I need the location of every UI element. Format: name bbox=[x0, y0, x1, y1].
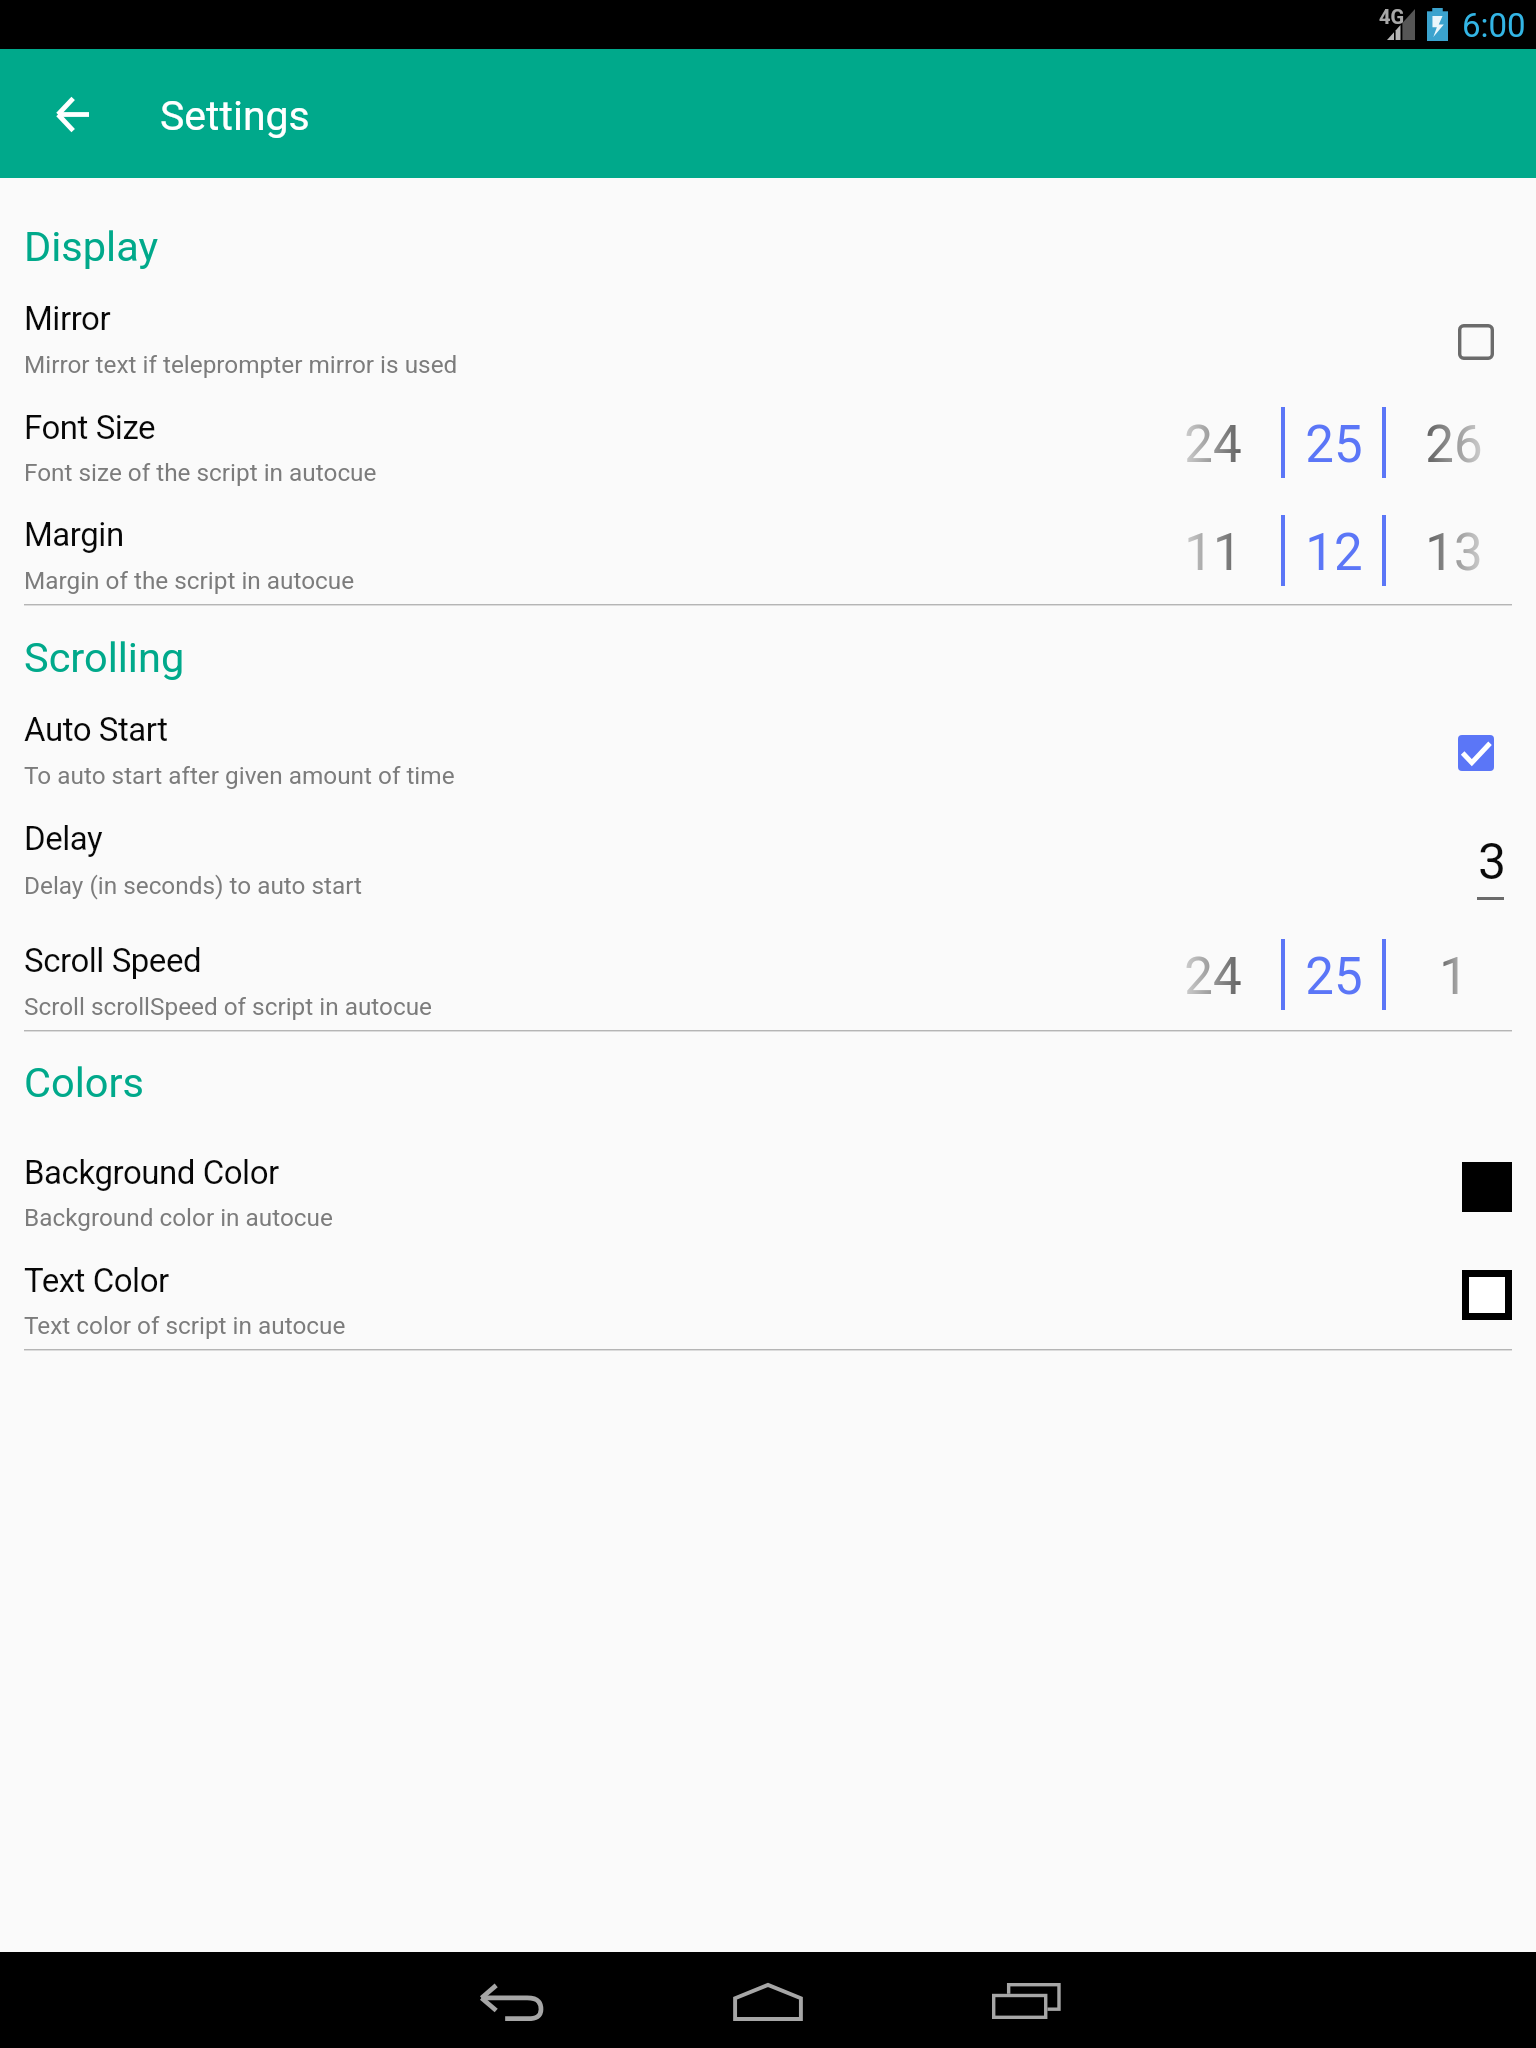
staticText: Display bbox=[24, 222, 159, 271]
staticText: Font size of the script in autocue bbox=[24, 458, 377, 487]
staticText: Font Size bbox=[24, 408, 156, 447]
staticText: 25 bbox=[1305, 415, 1363, 475]
staticText: Text color of script in autocue bbox=[24, 1311, 346, 1340]
staticText: 4G bbox=[1379, 5, 1405, 28]
staticText: 26 bbox=[1425, 415, 1483, 475]
staticText: Scroll scrollSpeed of script in autocue bbox=[24, 992, 432, 1021]
staticText: Margin bbox=[24, 515, 124, 554]
button[interactable]: Value 12 bbox=[1156, 515, 1496, 611]
button[interactable]: Font Size bbox=[0, 396, 1536, 504]
button[interactable]: Scroll Speed bbox=[0, 929, 1536, 1030]
button[interactable]: Unchecked bbox=[1440, 306, 1512, 378]
staticText: Delay (in seconds) to auto start bbox=[24, 871, 363, 900]
staticText: Scroll Speed bbox=[24, 941, 202, 980]
staticText: Scrolling bbox=[24, 633, 185, 682]
staticText: Colors bbox=[24, 1058, 144, 1107]
staticText: 12 bbox=[1305, 523, 1363, 583]
button[interactable]: Value 25 bbox=[1156, 407, 1496, 503]
staticText: Background Color bbox=[24, 1153, 279, 1192]
button[interactable]: Choose color bbox=[1442, 1250, 1532, 1340]
staticText: Mirror text if teleprompter mirror is us… bbox=[24, 350, 458, 379]
button[interactable]: Delay value bbox=[1440, 818, 1512, 918]
staticText: Background color in autocue bbox=[24, 1203, 333, 1232]
staticText: 24 bbox=[1184, 947, 1242, 1007]
staticText: 24 bbox=[1184, 415, 1242, 475]
button[interactable]: Value 25 bbox=[1156, 939, 1496, 1035]
staticText: Mirror bbox=[24, 299, 111, 338]
button[interactable]: Home bbox=[704, 1966, 832, 2034]
staticText: To auto start after given amount of time bbox=[24, 761, 455, 790]
button[interactable]: Auto Start bbox=[0, 699, 1536, 807]
button[interactable]: Text Color bbox=[0, 1243, 1536, 1349]
staticText: 11 bbox=[1184, 523, 1242, 583]
staticText: Margin of the script in autocue bbox=[24, 566, 355, 595]
button[interactable]: Background Color bbox=[0, 1142, 1536, 1243]
button[interactable]: Checked bbox=[1440, 717, 1512, 789]
button[interactable]: Margin bbox=[0, 504, 1536, 604]
button[interactable]: Back bbox=[445, 1966, 573, 2034]
staticText: Text Color bbox=[24, 1261, 169, 1300]
staticText: 25 bbox=[1305, 947, 1363, 1007]
staticText: Delay bbox=[24, 819, 103, 858]
button[interactable]: Navigate up bbox=[27, 69, 117, 159]
staticText: 1 bbox=[1439, 947, 1468, 1007]
staticText: Auto Start bbox=[24, 710, 168, 749]
staticText: 13 bbox=[1425, 523, 1483, 583]
staticText: Settings bbox=[160, 92, 310, 140]
button[interactable]: Mirror bbox=[0, 288, 1536, 396]
staticText: 3 bbox=[1470, 833, 1514, 892]
staticText: 6:00 bbox=[1462, 6, 1526, 45]
button[interactable]: Delay bbox=[0, 807, 1536, 929]
button[interactable]: Choose color bbox=[1442, 1142, 1532, 1232]
button[interactable]: Recent apps bbox=[964, 1966, 1092, 2034]
